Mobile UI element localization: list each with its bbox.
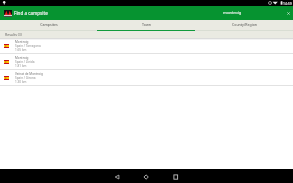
staticText: County/Region <box>232 22 257 27</box>
staticText: Town <box>142 22 151 27</box>
button[interactable]: County/Region <box>195 20 293 31</box>
staticText: 1.65 km <box>15 48 27 52</box>
staticText: Spain / Girona <box>15 76 36 80</box>
staticText: Find a campsite <box>14 10 48 16</box>
button[interactable]: Montroig <box>0 38 293 53</box>
staticText: Campsites <box>40 22 58 27</box>
button[interactable]: Open navigation <box>4 10 12 17</box>
button[interactable]: Home <box>97 169 195 183</box>
staticText: 14:59 <box>283 1 292 6</box>
staticText: Spain / Lleida <box>15 60 35 64</box>
button[interactable]: Clear search <box>286 11 291 16</box>
button[interactable]: Veïnat de Montroig <box>0 70 293 85</box>
staticText: 1.81 km <box>15 64 27 68</box>
staticText: Montroig <box>15 56 29 60</box>
button[interactable]: Campsites <box>0 20 97 31</box>
staticText: Spain / Tarragona <box>15 44 41 48</box>
staticText: Veïnat de Montroig <box>15 72 43 76</box>
button[interactable]: Town <box>97 20 195 31</box>
staticText: Montroig <box>15 40 29 44</box>
staticText: montroig <box>223 10 242 16</box>
button[interactable]: Montroig <box>0 54 293 69</box>
staticText: 1.30 km <box>15 80 27 84</box>
staticText: Results (3) <box>5 32 22 37</box>
